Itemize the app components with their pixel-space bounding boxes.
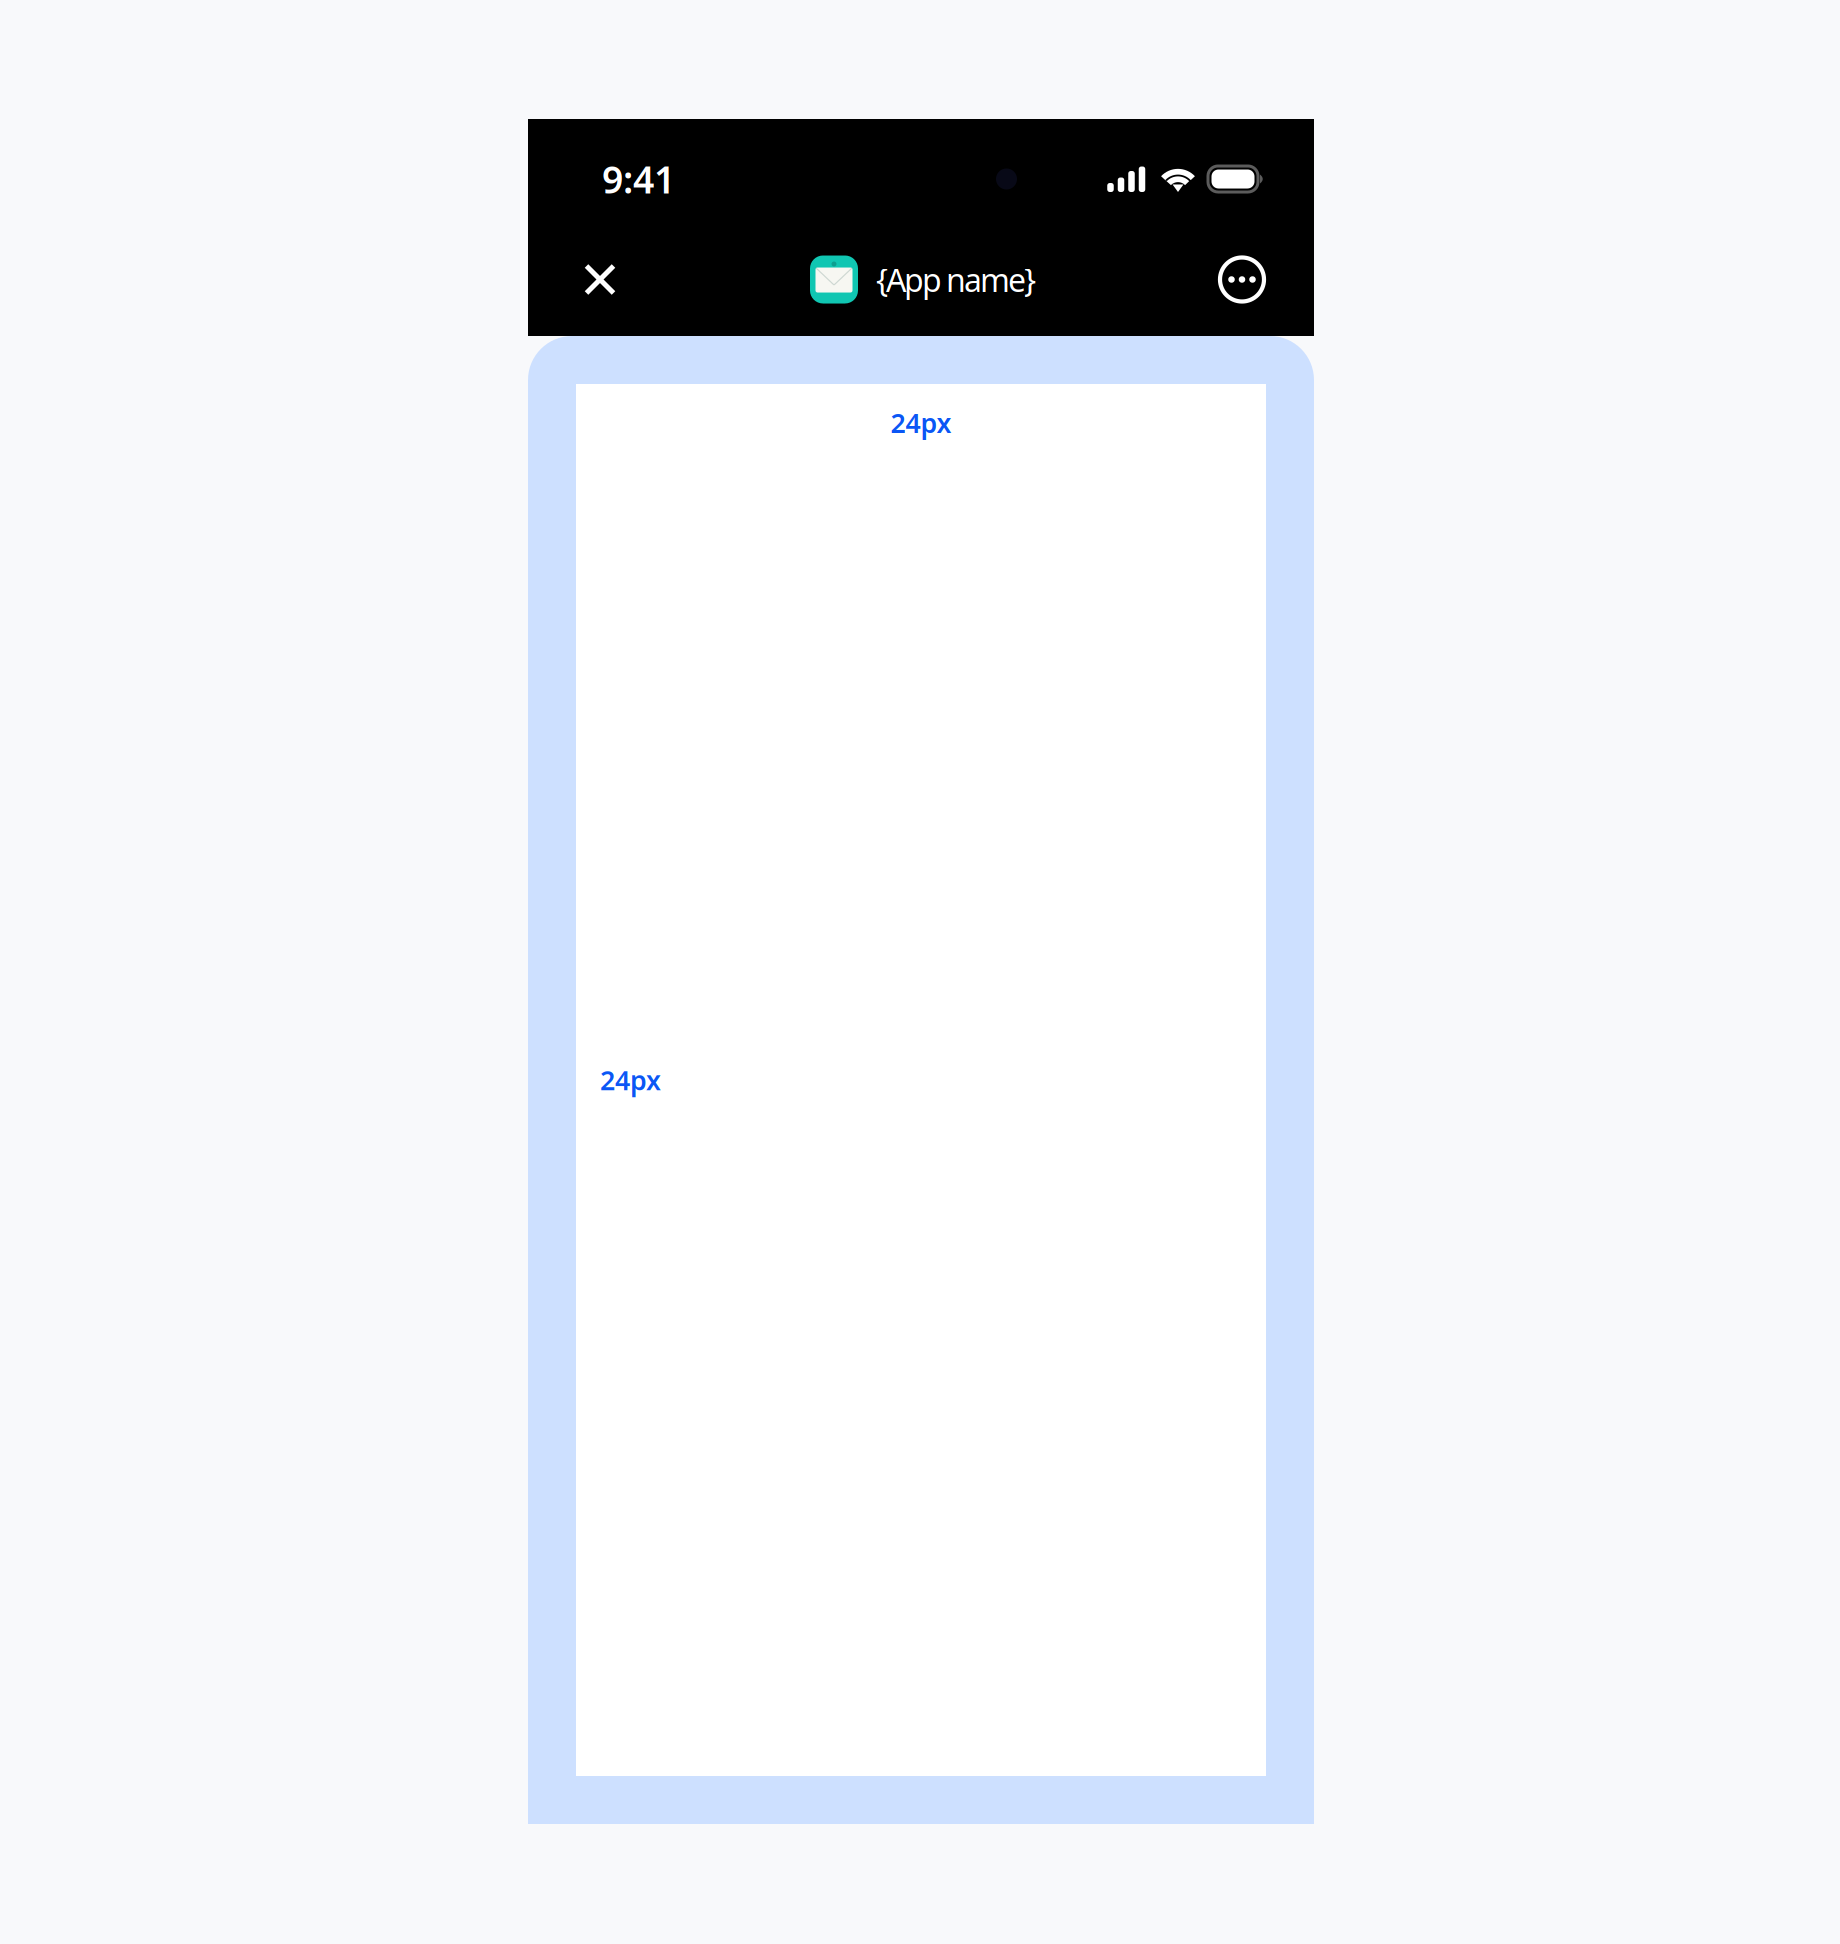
staticText: 24px <box>890 405 951 440</box>
staticText: 9:41 <box>602 154 675 204</box>
staticText: 24px <box>600 1062 661 1098</box>
button[interactable]: Close <box>569 248 631 310</box>
button[interactable]: More options <box>1211 248 1273 310</box>
staticText: {App name} <box>876 258 1036 301</box>
